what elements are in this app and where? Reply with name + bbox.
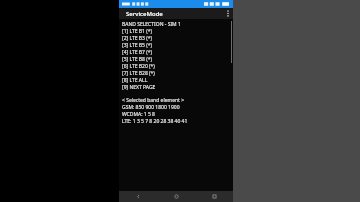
staticText: BAND SELECTION - SIM 1: [122, 21, 181, 28]
button[interactable]: BAND SELECTION - SIM 1: [122, 21, 233, 28]
staticText: [6] LTE B20 (*): [122, 63, 155, 70]
button[interactable]: [2] LTE B3 (*): [122, 35, 233, 42]
button[interactable]: [5] LTE B8 (*): [122, 56, 233, 63]
staticText: [8] LTE ALL: [122, 77, 148, 84]
staticText: [7] LTE B28 (*): [122, 70, 155, 77]
button[interactable]: [9] NEXT PAGE: [122, 84, 233, 91]
button[interactable]: [7] LTE B28 (*): [122, 70, 233, 77]
button[interactable]: Back: [119, 191, 157, 202]
button[interactable]: [6] LTE B20 (*): [122, 63, 233, 70]
button[interactable]: [3] LTE B5 (*): [122, 42, 233, 49]
staticText: [3] LTE B5 (*): [122, 42, 152, 49]
button[interactable]: [4] LTE B7 (*): [122, 49, 233, 56]
staticText: [5] LTE B8 (*): [122, 56, 152, 63]
staticText: [9] NEXT PAGE: [122, 84, 156, 91]
staticText: [4] LTE B7 (*): [122, 49, 152, 56]
staticText: GSM: 850 900 1800 1900: [122, 104, 180, 111]
staticText: [2] LTE B3 (*): [122, 35, 152, 42]
staticText: LTE: 1 3 5 7 8 20 28 38 40 41: [122, 118, 188, 125]
staticText: WCDMA: 1 5 8: [122, 111, 155, 118]
button[interactable]: Recent apps: [195, 191, 233, 202]
staticText: [1] LTE B1 (*): [122, 28, 152, 35]
staticText: ServiceMode: [126, 10, 163, 18]
button[interactable]: More options: [222, 8, 233, 19]
button[interactable]: [8] LTE ALL: [122, 77, 233, 84]
button[interactable]: [1] LTE B1 (*): [122, 28, 233, 35]
button[interactable]: Home: [157, 191, 195, 202]
staticText: < Selected band element >: [122, 97, 185, 104]
